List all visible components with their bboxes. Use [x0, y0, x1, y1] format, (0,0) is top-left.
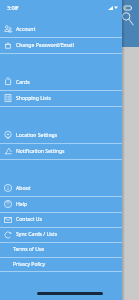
button[interactable]: Help — [0, 196, 122, 212]
button[interactable]: Notification Settings — [0, 143, 122, 159]
button[interactable]: Search — [117, 9, 137, 29]
staticText: Cards — [16, 79, 30, 86]
button[interactable]: Sync Cards / Lists — [0, 227, 122, 242]
button[interactable]: Location Settings — [0, 127, 122, 143]
button[interactable]: Terms of Use — [0, 242, 122, 257]
staticText: About — [16, 185, 31, 192]
button[interactable]: Contact Us — [0, 212, 122, 227]
staticText: Location Settings — [16, 132, 58, 139]
staticText: Change Password/Email — [16, 42, 74, 49]
staticText: Shopping Lists — [16, 95, 51, 102]
button[interactable]: Privacy Policy — [0, 257, 122, 271]
staticText: Sync Cards / Lists — [16, 231, 58, 238]
staticText: Notification Settings — [16, 148, 65, 155]
staticText: Help — [16, 201, 28, 208]
button[interactable]: Cards — [0, 74, 122, 90]
staticText: Contact Us — [16, 216, 42, 223]
staticText: 3:08 — [7, 4, 18, 11]
staticText: Account — [16, 26, 36, 33]
button[interactable]: Account — [0, 21, 122, 37]
staticText: Privacy Policy — [13, 261, 46, 268]
button[interactable]: Change Password/Email — [0, 37, 122, 53]
staticText: Terms of Use — [13, 246, 45, 253]
button[interactable]: About — [0, 180, 122, 196]
button[interactable]: Shopping Lists — [0, 90, 122, 106]
